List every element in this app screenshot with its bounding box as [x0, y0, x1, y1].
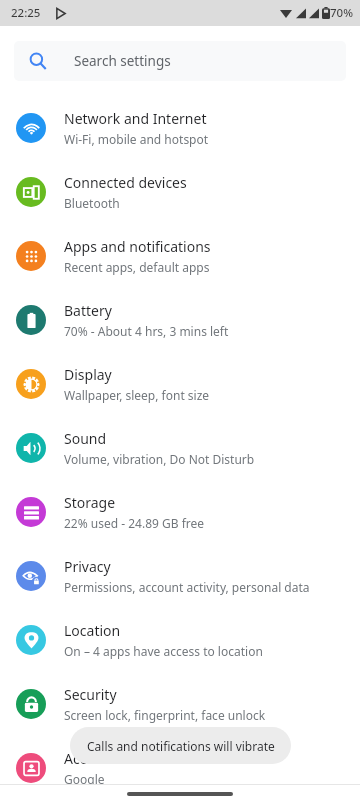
staticText: Storage [64, 493, 116, 512]
staticText: Security [64, 685, 117, 704]
staticText: On – 4 apps have access to location [64, 643, 263, 659]
button[interactable]: Sound [0, 416, 360, 480]
button[interactable]: Accounts [0, 736, 360, 800]
button[interactable]: Location [0, 608, 360, 672]
staticText: 22:25 [11, 5, 41, 21]
button[interactable]: Privacy [0, 544, 360, 608]
button[interactable]: Security [0, 672, 360, 736]
staticText: Wallpaper, sleep, font size [64, 387, 210, 403]
staticText: Display [64, 365, 112, 384]
other: Play Store notification [54, 7, 67, 20]
staticText: Privacy [64, 557, 111, 576]
staticText: Permissions, account activity, personal … [64, 579, 310, 595]
staticText: 22% used - 24.89 GB free [64, 515, 205, 531]
staticText: Google [64, 771, 105, 787]
staticText: Accounts [64, 749, 124, 768]
button[interactable]: Connected devices [0, 160, 360, 224]
staticText: Screen lock, fingerprint, face unlock [64, 707, 266, 723]
staticText: 70% [330, 5, 353, 21]
button[interactable]: Search settings [14, 41, 346, 81]
staticText: Location [64, 621, 121, 640]
staticText: Search settings [74, 52, 171, 70]
staticText: Recent apps, default apps [64, 259, 210, 275]
button[interactable]: Battery [0, 288, 360, 352]
staticText: Battery [64, 301, 112, 320]
staticText: Bluetooth [64, 195, 120, 211]
staticText: Sound [64, 429, 107, 448]
button[interactable]: Display [0, 352, 360, 416]
staticText: Connected devices [64, 173, 187, 192]
staticText: Network and Internet [64, 109, 207, 128]
button[interactable]: Network and Internet [0, 96, 360, 160]
staticText: 70% - About 4 hrs, 3 mins left [64, 323, 229, 339]
staticText: Wi-Fi, mobile and hotspot [64, 131, 209, 147]
staticText: Volume, vibration, Do Not Disturb [64, 451, 255, 467]
staticText: Calls and notifications will vibrate [87, 738, 275, 754]
staticText: Apps and notifications [64, 237, 211, 256]
button[interactable]: Storage [0, 480, 360, 544]
button[interactable]: Apps and notifications [0, 224, 360, 288]
